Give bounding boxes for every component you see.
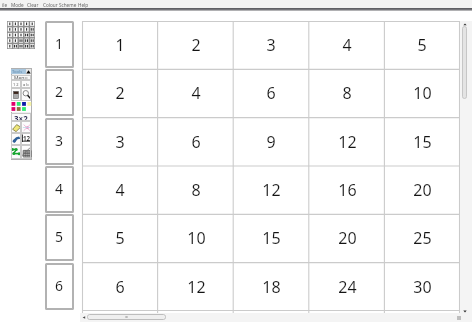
- staticText: 18: [262, 276, 281, 298]
- staticText: 24: [338, 276, 357, 298]
- staticText: Clear: [27, 2, 39, 8]
- staticText: 5: [115, 227, 125, 249]
- staticText: 4: [115, 179, 125, 201]
- button[interactable]: 5: [45, 214, 74, 261]
- staticText: 8: [191, 179, 201, 201]
- button[interactable]: 2: [45, 69, 74, 116]
- button[interactable]: Tool: [21, 145, 31, 159]
- staticText: 123: [23, 134, 33, 146]
- button[interactable]: Tool: [21, 88, 31, 101]
- button[interactable]: 6: [233, 69, 309, 117]
- button[interactable]: 20: [384, 166, 460, 214]
- button[interactable]: 5: [82, 214, 158, 262]
- button[interactable]: 12: [309, 118, 385, 166]
- button[interactable]: 4: [82, 166, 158, 214]
- button[interactable]: Menu: [11, 75, 31, 80]
- button[interactable]: Tool: [21, 133, 31, 145]
- button[interactable]: Scroll horizontally: [87, 314, 166, 320]
- button[interactable]: 10: [158, 214, 234, 262]
- staticText: 1 2: [13, 82, 19, 87]
- button[interactable]: Tools: [11, 69, 26, 74]
- staticText: 12: [187, 276, 206, 298]
- button[interactable]: 8: [158, 166, 234, 214]
- staticText: 3: [55, 131, 64, 150]
- button[interactable]: 1: [82, 21, 158, 69]
- staticText: 12: [338, 131, 357, 153]
- button[interactable]: 3: [82, 118, 158, 166]
- staticText: 4: [191, 82, 201, 104]
- staticText: Mode: [11, 2, 24, 8]
- button[interactable]: 18: [233, 263, 309, 311]
- button[interactable]: 2: [158, 21, 234, 69]
- button[interactable]: Help: [78, 1, 89, 8]
- staticText: 10: [187, 227, 206, 249]
- staticText: a b: [23, 82, 29, 87]
- button[interactable]: 10: [384, 69, 460, 117]
- staticText: 5: [55, 227, 64, 246]
- staticText: 3×2: [14, 113, 28, 121]
- staticText: 3: [115, 131, 125, 153]
- button[interactable]: 3: [45, 118, 74, 165]
- button[interactable]: 12: [233, 166, 309, 214]
- button[interactable]: 2: [82, 69, 158, 117]
- staticText: 20: [338, 227, 357, 249]
- button[interactable]: Tool: [11, 88, 21, 101]
- button[interactable]: Scroll vertically: [462, 26, 467, 99]
- button[interactable]: 30: [384, 263, 460, 311]
- staticText: 2: [115, 82, 125, 104]
- button[interactable]: Clear: [27, 1, 39, 8]
- staticText: 4: [55, 179, 64, 198]
- button[interactable]: ile: [2, 1, 8, 8]
- staticText: 1: [55, 34, 64, 53]
- staticText: 20: [413, 179, 432, 201]
- button[interactable]: Table preview: [7, 21, 35, 49]
- staticText: 2: [191, 34, 201, 56]
- button[interactable]: 1: [45, 21, 74, 68]
- staticText: 8: [342, 82, 352, 104]
- button[interactable]: 3: [233, 21, 309, 69]
- staticText: 9: [266, 131, 276, 153]
- button[interactable]: 25: [384, 214, 460, 262]
- staticText: Colour Scheme: [43, 2, 77, 8]
- button[interactable]: 24: [309, 263, 385, 311]
- button[interactable]: 8: [309, 69, 385, 117]
- staticText: Help: [78, 2, 89, 8]
- button[interactable]: Collapse tools: [26, 69, 31, 74]
- button[interactable]: Colour Scheme: [43, 1, 77, 8]
- button[interactable]: 4: [158, 69, 234, 117]
- button[interactable]: Tool: [21, 121, 31, 133]
- button[interactable]: Tool: [21, 80, 31, 88]
- staticText: 15: [262, 227, 281, 249]
- button[interactable]: 16: [309, 166, 385, 214]
- button[interactable]: 6: [158, 118, 234, 166]
- staticText: 6: [191, 131, 201, 153]
- button[interactable]: 12: [158, 263, 234, 311]
- button[interactable]: 15: [233, 214, 309, 262]
- button[interactable]: Tool: [11, 145, 21, 159]
- button[interactable]: 6: [82, 263, 158, 311]
- button[interactable]: 3×2: [11, 113, 31, 121]
- staticText: 6: [115, 276, 125, 298]
- staticText: ile: [2, 2, 8, 8]
- staticText: 15: [413, 131, 432, 153]
- staticText: 6: [266, 82, 276, 104]
- staticText: 6: [55, 276, 64, 295]
- button[interactable]: 5: [384, 21, 460, 69]
- button[interactable]: 4: [45, 166, 74, 213]
- staticText: 4: [342, 34, 352, 56]
- staticText: Menu: [14, 75, 28, 80]
- button[interactable]: 15: [384, 118, 460, 166]
- button[interactable]: Tool: [11, 121, 21, 133]
- button[interactable]: Colours: [11, 101, 31, 112]
- button[interactable]: 9: [233, 118, 309, 166]
- staticText: 12: [262, 179, 281, 201]
- button[interactable]: Tool: [11, 80, 21, 88]
- button[interactable]: 4: [309, 21, 385, 69]
- staticText: 3: [266, 34, 276, 56]
- button[interactable]: Mode: [11, 1, 24, 8]
- button[interactable]: Tool: [11, 133, 21, 145]
- button[interactable]: 6: [45, 263, 74, 310]
- staticText: 5: [417, 34, 427, 56]
- staticText: 2: [55, 82, 64, 101]
- button[interactable]: 20: [309, 214, 385, 262]
